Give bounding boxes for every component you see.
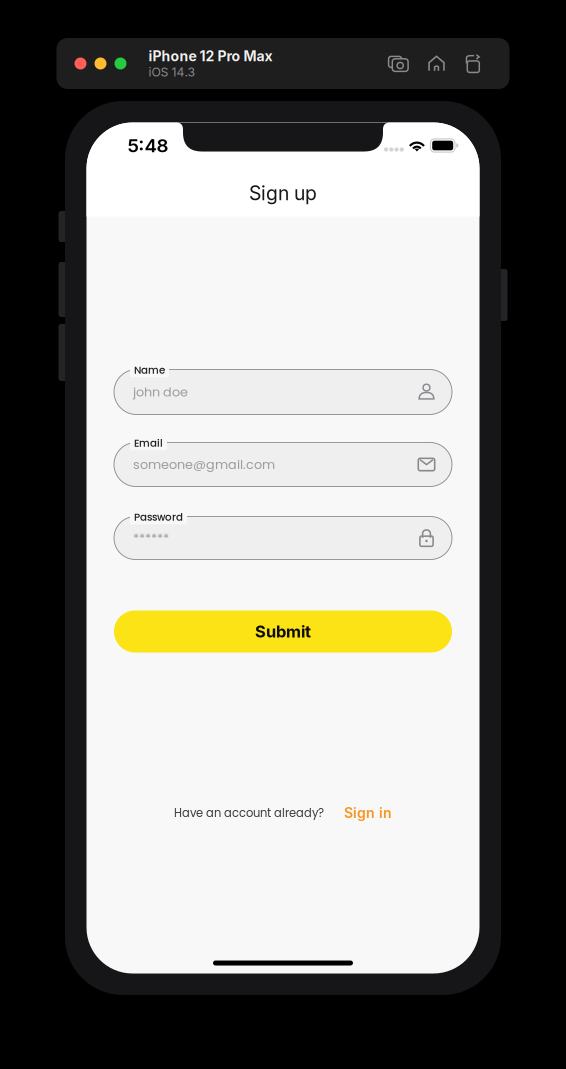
staticText: Submit <box>255 622 311 641</box>
button[interactable]: Sign in <box>344 804 392 821</box>
staticText: Password <box>134 510 183 524</box>
staticText: Email <box>134 436 163 450</box>
staticText: Name <box>134 363 165 377</box>
button[interactable]: someone@gmail.com <box>114 442 452 486</box>
staticText: john doe <box>133 383 188 401</box>
button[interactable]: Rotate <box>463 54 481 72</box>
button[interactable]: Screenshot <box>387 54 409 72</box>
button[interactable]: Submit <box>114 610 452 652</box>
staticText: iPhone 12 Pro Max <box>148 48 272 64</box>
button[interactable]: john doe <box>114 369 452 414</box>
staticText: iOS 14.3 <box>148 64 195 79</box>
staticText: Have an account already? <box>174 805 324 821</box>
staticText: 5:48 <box>127 134 168 157</box>
staticText: Sign up <box>249 181 317 205</box>
staticText: ****** <box>133 529 169 547</box>
button[interactable]: ****** <box>114 516 452 559</box>
staticText: someone@gmail.com <box>133 455 275 473</box>
button[interactable]: Home <box>427 54 445 72</box>
staticText: Sign in <box>344 804 392 821</box>
